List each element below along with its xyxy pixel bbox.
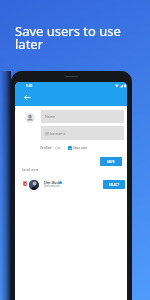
staticText: Verified bbox=[40, 146, 52, 150]
staticText: @Username bbox=[45, 131, 66, 136]
button[interactable]: Back bbox=[22, 92, 32, 102]
staticText: Name bbox=[45, 114, 56, 119]
staticText: Save users to use later bbox=[15, 22, 127, 53]
button[interactable]: SAVE bbox=[100, 157, 122, 166]
button[interactable]: Verified toggle bbox=[55, 146, 61, 150]
staticText: SAVE bbox=[107, 160, 115, 164]
staticText: SELECT bbox=[109, 183, 120, 187]
button[interactable]: @Username bbox=[41, 126, 124, 140]
staticText: Save user bbox=[73, 146, 88, 150]
staticText: Elon Musk bbox=[44, 181, 60, 185]
button[interactable]: Name bbox=[41, 110, 124, 123]
staticText: 5:33 bbox=[26, 84, 33, 88]
staticText: Saved users bbox=[22, 168, 39, 172]
button[interactable]: SELECT bbox=[103, 180, 125, 189]
staticText: @elonmusk bbox=[44, 184, 60, 188]
button[interactable]: Delete user bbox=[23, 181, 27, 186]
button[interactable]: Save user checkbox bbox=[68, 146, 72, 150]
